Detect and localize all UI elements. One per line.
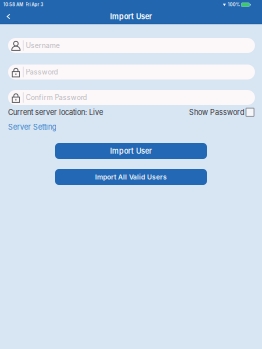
staticText: Fri Apr 3: [26, 2, 44, 7]
button[interactable]: Username: [8, 38, 255, 53]
button[interactable]: Server Setting: [8, 119, 255, 134]
button[interactable]: Show Password: [189, 108, 254, 117]
staticText: Current server location: Live: [8, 108, 103, 117]
button[interactable]: Back: [0, 9, 17, 23]
staticText: Import User: [110, 147, 152, 155]
staticText: Username: [26, 41, 60, 50]
staticText: Import User: [110, 12, 152, 21]
staticText: Import All Valid Users: [95, 173, 167, 181]
staticText: Show Password: [189, 108, 244, 117]
staticText: Password: [26, 68, 58, 76]
button[interactable]: Confirm Password: [8, 90, 255, 105]
button[interactable]: Import User: [55, 143, 207, 159]
staticText: 100%: [228, 2, 240, 7]
button[interactable]: Import All Valid Users: [55, 169, 207, 185]
staticText: Confirm Password: [26, 93, 87, 102]
staticText: Server Setting: [8, 123, 56, 131]
button[interactable]: Password: [8, 64, 255, 79]
staticText: 10:58 AM: [3, 2, 23, 7]
